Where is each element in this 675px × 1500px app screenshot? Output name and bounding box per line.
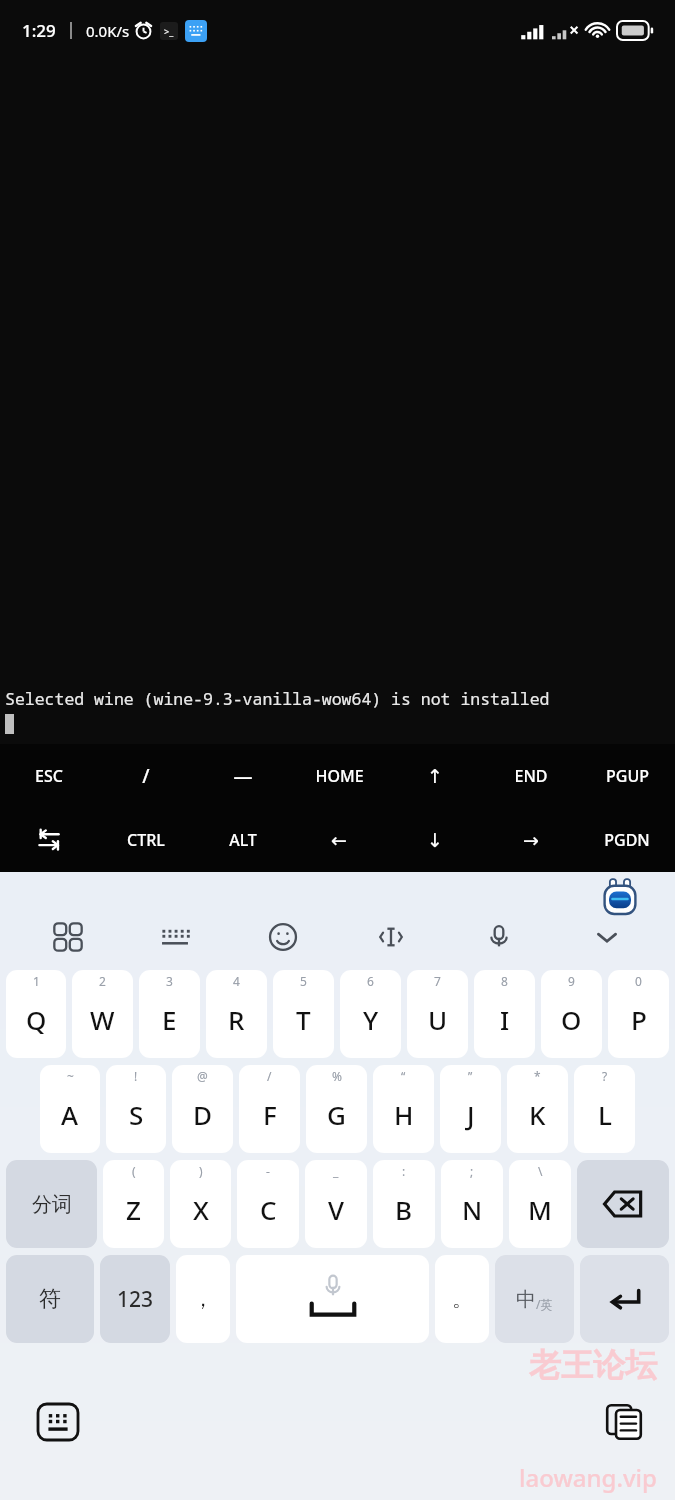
staticText: D (193, 1097, 213, 1132)
button[interactable]: PGDN (579, 808, 675, 872)
staticText: / (267, 1068, 272, 1084)
staticText: 7 (434, 973, 441, 989)
staticText: \ (538, 1163, 543, 1179)
staticText: Z (126, 1192, 141, 1227)
button[interactable]: / (97, 744, 194, 808)
button[interactable]: 0 (608, 970, 669, 1058)
staticText: U (428, 1002, 448, 1037)
staticText: 分词 (32, 1192, 72, 1217)
button[interactable]: 分词 (6, 1160, 97, 1248)
button[interactable]: @ (172, 1065, 233, 1153)
staticText: M (528, 1192, 552, 1227)
staticText: O (561, 1002, 582, 1037)
button[interactable]: ( (103, 1160, 164, 1248)
button[interactable]: Space (236, 1255, 429, 1343)
button[interactable]: % (306, 1065, 367, 1153)
button[interactable]: Voice input (445, 910, 553, 964)
staticText: — (233, 763, 253, 789)
staticText: C (260, 1192, 277, 1227)
staticText: R (228, 1002, 245, 1037)
staticText: ) (199, 1163, 203, 1179)
button[interactable]: Assistant (597, 876, 643, 922)
button[interactable]: HOME (291, 744, 387, 808)
staticText: “ (401, 1068, 406, 1084)
button[interactable]: END (483, 744, 579, 808)
staticText: F (263, 1097, 277, 1132)
staticText: X (193, 1192, 209, 1227)
button[interactable]: 1 (6, 970, 66, 1058)
button[interactable]: → (483, 808, 579, 872)
button[interactable]: 8 (474, 970, 535, 1058)
button[interactable]: 123 (100, 1255, 170, 1343)
staticText: J (467, 1097, 475, 1132)
button[interactable]: ~ (40, 1065, 100, 1153)
button[interactable]: 7 (407, 970, 468, 1058)
button[interactable]: “ (373, 1065, 434, 1153)
staticText: ↓ (427, 829, 443, 851)
button[interactable]: 9 (541, 970, 602, 1058)
staticText: W (90, 1002, 115, 1037)
button[interactable]: Emoji (229, 910, 337, 964)
staticText: ， (193, 1287, 213, 1312)
staticText: S (129, 1097, 144, 1132)
button[interactable]: 6 (340, 970, 401, 1058)
button[interactable]: \ (509, 1160, 571, 1248)
button[interactable]: Switch input method (37, 1403, 79, 1441)
button[interactable]: Tab (0, 808, 97, 872)
staticText: I (500, 1002, 510, 1037)
staticText: ” (468, 1068, 473, 1084)
button[interactable]: PGUP (579, 744, 675, 808)
staticText: N (462, 1192, 483, 1227)
staticText: B (395, 1192, 413, 1227)
staticText: ↑ (427, 765, 443, 787)
staticText: E (162, 1002, 177, 1037)
button[interactable]: ; (441, 1160, 503, 1248)
button[interactable]: ” (440, 1065, 501, 1153)
button[interactable]: CTRL (97, 808, 194, 872)
button[interactable]: — (194, 744, 291, 808)
staticText: 3 (166, 973, 173, 989)
staticText: G (327, 1097, 346, 1132)
staticText: V (328, 1192, 344, 1227)
button[interactable]: - (237, 1160, 299, 1248)
button[interactable]: ← (291, 808, 387, 872)
button[interactable]: Apps (14, 910, 121, 964)
button[interactable]: ， (176, 1255, 230, 1343)
button[interactable]: 。 (435, 1255, 489, 1343)
staticText: A (61, 1097, 79, 1132)
button[interactable]: Backspace (577, 1160, 669, 1248)
button[interactable]: ! (106, 1065, 166, 1153)
staticText: 老王论坛 (529, 1345, 657, 1385)
button[interactable]: Enter (580, 1255, 669, 1343)
staticText: 2 (99, 973, 106, 989)
staticText: : (402, 1163, 406, 1179)
button[interactable]: Text editing (337, 910, 445, 964)
button[interactable]: ESC (0, 744, 97, 808)
button[interactable]: 2 (72, 970, 133, 1058)
staticText: L (598, 1097, 612, 1132)
staticText: ESC (35, 765, 63, 787)
button[interactable]: 符 (6, 1255, 94, 1343)
button[interactable]: 4 (206, 970, 267, 1058)
button[interactable]: ) (170, 1160, 231, 1248)
staticText: Selected wine (wine-9.3-vanilla-wow64) i… (5, 687, 550, 709)
button[interactable]: Clipboard (601, 1399, 647, 1445)
button[interactable]: 5 (273, 970, 334, 1058)
button[interactable]: 中 (495, 1255, 574, 1343)
button[interactable]: ↓ (387, 808, 483, 872)
button[interactable]: ? (574, 1065, 635, 1153)
staticText: H (394, 1097, 414, 1132)
button[interactable]: ALT (194, 808, 291, 872)
button[interactable]: * (507, 1065, 568, 1153)
staticText: % (332, 1068, 342, 1084)
button[interactable]: _ (305, 1160, 367, 1248)
staticText: ALT (229, 829, 257, 851)
button[interactable]: ↑ (387, 744, 483, 808)
button[interactable]: 3 (139, 970, 200, 1058)
staticText: END (514, 765, 548, 787)
button[interactable]: Keyboard layout (121, 910, 229, 964)
staticText: - (266, 1163, 270, 1179)
button[interactable]: : (373, 1160, 435, 1248)
button[interactable]: / (239, 1065, 300, 1153)
button[interactable]: Hide keyboard (553, 910, 661, 964)
